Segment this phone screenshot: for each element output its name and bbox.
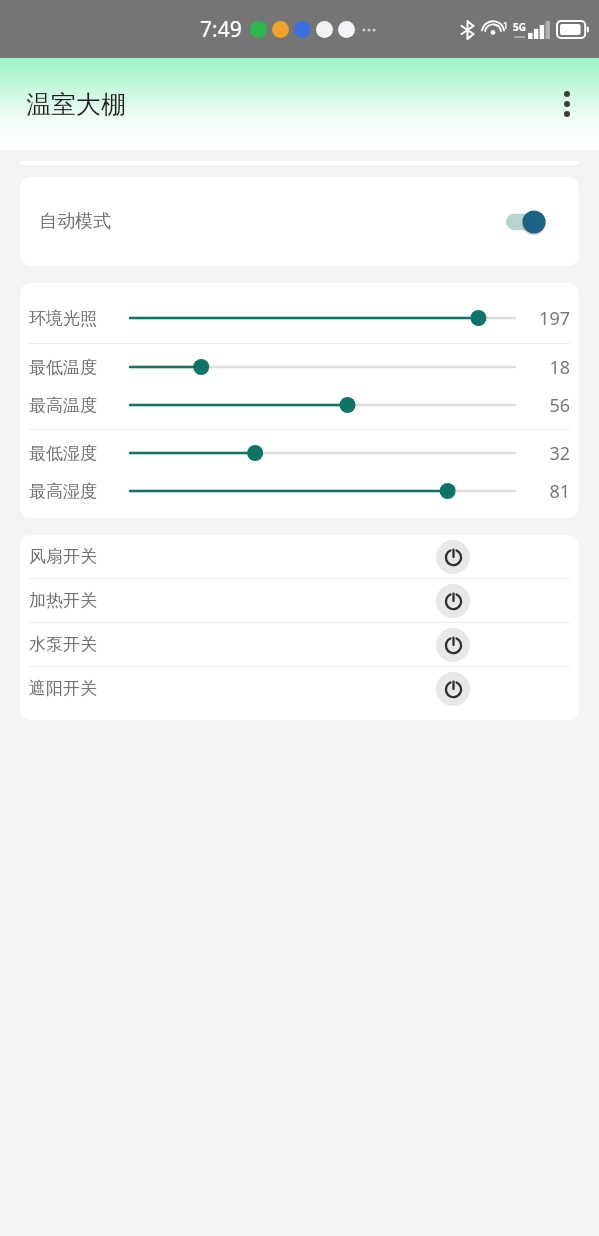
staticText: 温室大棚	[26, 89, 126, 120]
staticText: 7:49	[200, 15, 242, 44]
button[interactable]: 遮阳开关 power	[436, 672, 470, 706]
button[interactable]: More options	[543, 80, 591, 128]
staticText: 32	[549, 441, 570, 466]
staticText: 自动模式	[39, 210, 111, 233]
staticText: 18	[549, 355, 570, 380]
button[interactable]: 水泵开关	[29, 623, 570, 666]
staticText: 最高湿度	[29, 481, 121, 502]
button[interactable]: 风扇开关	[29, 535, 570, 578]
button[interactable]: 最低湿度	[29, 434, 570, 472]
button[interactable]: 环境光照	[29, 299, 570, 337]
staticText: 最高温度	[29, 395, 121, 416]
button[interactable]: 遮阳开关	[29, 667, 570, 710]
staticText: 1	[503, 19, 509, 31]
button[interactable]: 最高温度	[29, 386, 570, 424]
staticText: 最低温度	[29, 357, 121, 378]
staticText: 风扇开关	[29, 546, 97, 567]
staticText: 加热开关	[29, 590, 97, 611]
button[interactable]: Auto mode toggle	[506, 205, 560, 239]
button[interactable]: 水泵开关 power	[436, 628, 470, 662]
staticText: 5G	[513, 20, 526, 34]
staticText: 56	[549, 393, 570, 418]
button[interactable]: 最高湿度	[29, 472, 570, 510]
button[interactable]: 自动模式	[20, 177, 579, 266]
button[interactable]: 加热开关	[29, 579, 570, 622]
button[interactable]: 风扇开关 power	[436, 540, 470, 574]
staticText: 遮阳开关	[29, 678, 97, 699]
button[interactable]: 最低温度	[29, 348, 570, 386]
staticText: 81	[549, 479, 570, 504]
button[interactable]: 加热开关 power	[436, 584, 470, 618]
staticText: 水泵开关	[29, 634, 97, 655]
staticText: 197	[539, 306, 570, 331]
staticText: 最低湿度	[29, 443, 121, 464]
staticText: 环境光照	[29, 308, 121, 329]
